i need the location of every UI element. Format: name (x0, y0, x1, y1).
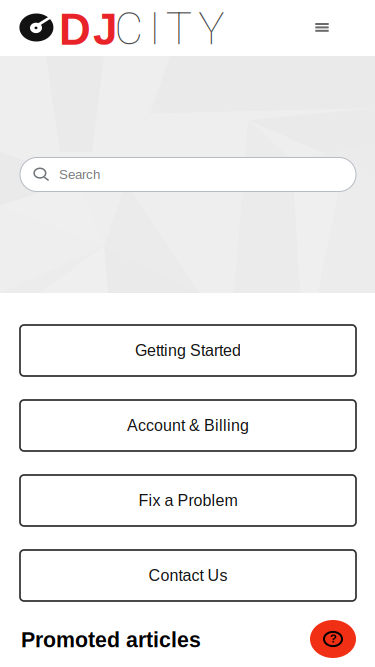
button[interactable]: Getting Started (20, 325, 356, 376)
button[interactable]: DJ City (19, 7, 239, 49)
staticText: Fix a Problem (138, 492, 237, 509)
staticText: Contact Us (148, 567, 227, 584)
staticText: Promoted articles (21, 628, 201, 652)
button[interactable]: Search (20, 157, 356, 191)
staticText: CITY (114, 3, 224, 55)
staticText: Account & Billing (127, 417, 249, 434)
button[interactable]: Account & Billing (20, 400, 356, 451)
staticText: Search (59, 167, 100, 182)
button[interactable]: Contact Us (20, 550, 356, 601)
staticText: DJ (59, 5, 117, 54)
button[interactable]: Fix a Problem (20, 475, 356, 526)
staticText: Getting Started (135, 342, 241, 359)
button[interactable]: Help (310, 620, 356, 658)
staticText: ? (330, 632, 337, 645)
button[interactable]: Menu (307, 12, 337, 42)
